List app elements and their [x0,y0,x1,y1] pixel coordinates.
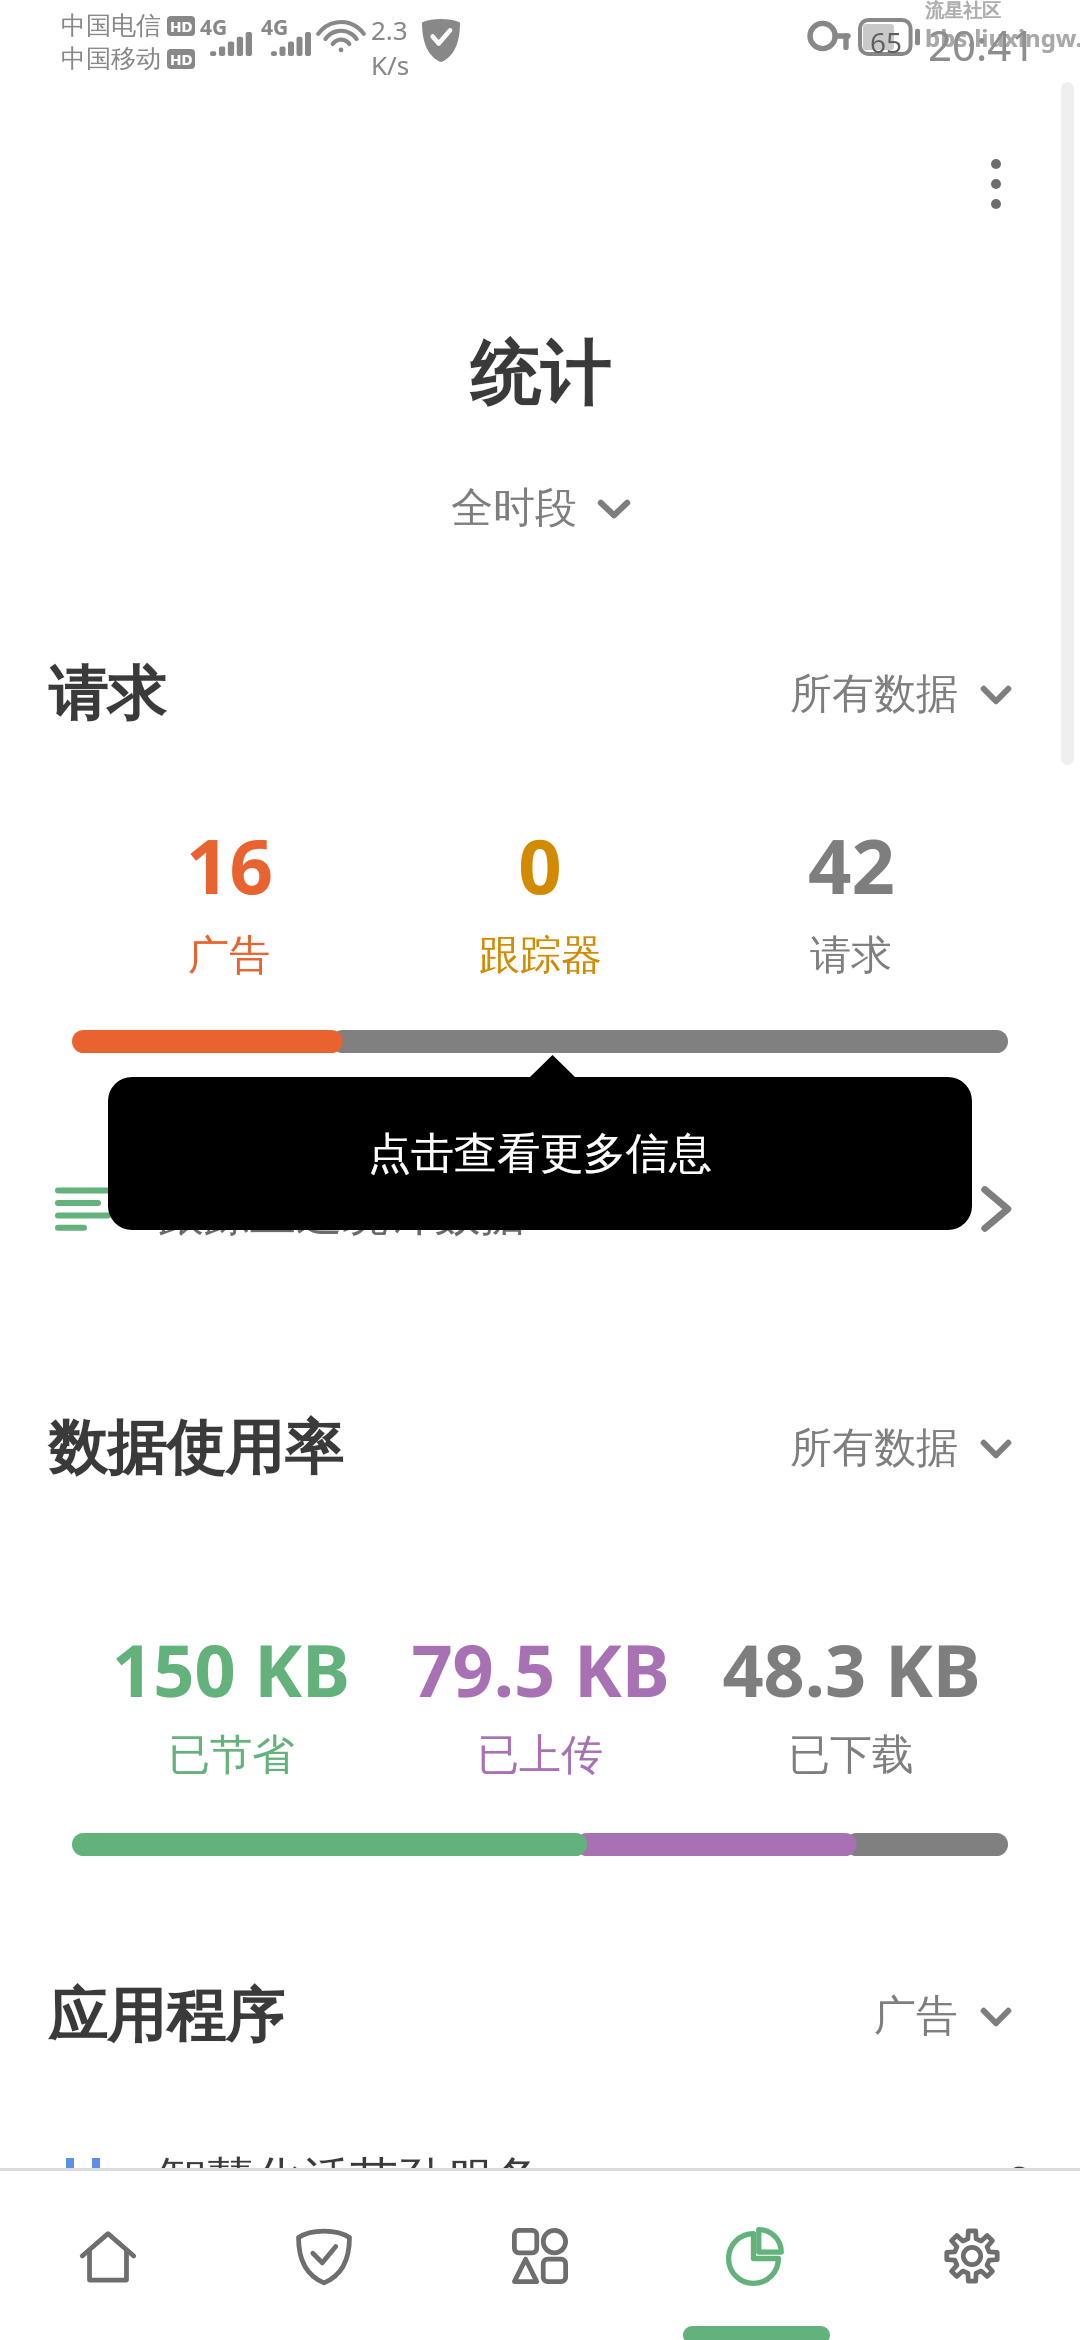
staticText: HD [170,16,193,36]
button[interactable]: Protection [216,2171,432,2340]
button[interactable]: 智慧化活苦劲服务 [0,2140,1080,2169]
staticText: 16 [186,813,273,917]
staticText: 已下载 [788,1729,914,1782]
staticText: 已节省 [168,1729,294,1782]
staticText: 所有数据 [790,1422,958,1475]
staticText: 0 [518,813,562,917]
staticText: 4G [261,13,289,42]
staticText: 79.5 KB [411,1620,670,1718]
staticText: K/s [371,47,410,82]
staticText: 广告 [874,1990,958,2043]
staticText: bbs.liuxingw.com [925,21,1080,54]
staticText: 42 [808,813,895,917]
button[interactable]: 广告 [874,1990,1010,2043]
staticText: 2.3 [371,12,408,47]
button[interactable]: 点击查看更多信息 [108,1077,972,1230]
staticText: 48.3 KB [722,1620,981,1718]
staticText: 跟踪上述统计数据 [158,1186,526,1244]
staticText: 数据使用率 [48,1411,343,1485]
button[interactable]: Statistics [648,2171,864,2340]
staticText: 点击查看更多信息 [368,1127,712,1181]
staticText: 统计 [470,331,610,419]
staticText: 150 KB [112,1620,350,1718]
staticText: 跟踪器 [479,930,602,982]
button[interactable]: 所有数据 [790,668,1010,721]
staticText: 已上传 [477,1729,603,1782]
button[interactable]: Apps [432,2171,648,2340]
staticText: 20:41 [928,16,1036,73]
staticText: 广告 [188,930,270,982]
button[interactable]: Settings [864,2171,1080,2340]
button[interactable]: Home [0,2171,216,2340]
button[interactable]: More options [951,139,1041,229]
button[interactable]: 跟踪上述统计数据 [0,1160,1080,1260]
staticText: 流星社区 [925,0,1001,23]
staticText: 9 [1006,2150,1034,2169]
staticText: 中国电信 [61,10,161,41]
staticText: 请求 [48,657,166,731]
staticText: 65 [870,23,903,61]
staticText: 4G [200,13,228,42]
staticText: 请求 [810,930,892,982]
staticText: 所有数据 [790,668,958,721]
staticText: 全时段 [451,482,577,535]
button[interactable]: 全时段 [443,482,637,535]
staticText: 中国移动 [61,43,161,74]
staticText: 智慧化活苦劲服务 [158,2150,542,2169]
staticText: 应用程序 [48,1979,284,2053]
staticText: HD [170,49,193,69]
button[interactable]: 所有数据 [790,1422,1010,1475]
